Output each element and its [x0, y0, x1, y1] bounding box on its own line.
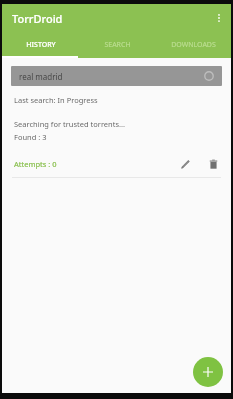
staticText: Found : 3 [14, 132, 47, 142]
button[interactable]: real madrid [11, 66, 222, 86]
button[interactable]: HISTORY [2, 32, 79, 58]
staticText: SEARCH [104, 40, 131, 50]
button[interactable]: Edit [175, 154, 195, 174]
staticText: Last search: In Progress [14, 95, 98, 105]
staticText: TorrDroid [12, 11, 63, 26]
staticText: HISTORY [26, 40, 56, 50]
staticText: Attempts : 0 [14, 159, 57, 169]
staticText: Searching for trusted torrents... [14, 119, 126, 129]
button[interactable]: SEARCH [79, 32, 155, 58]
button[interactable]: More options [207, 6, 231, 30]
button[interactable]: Delete [203, 154, 223, 174]
staticText: DOWNLOADS [171, 40, 216, 50]
button[interactable]: DOWNLOADS [155, 32, 231, 58]
staticText: real madrid [19, 71, 63, 82]
button[interactable]: Add new search [193, 357, 223, 387]
